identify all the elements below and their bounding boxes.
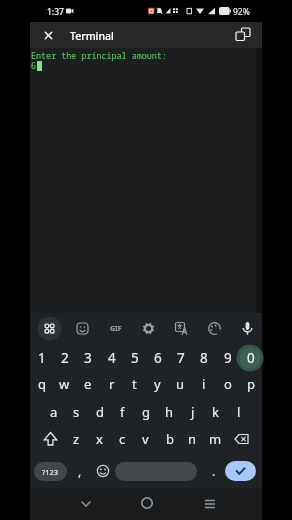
button[interactable]: h: [158, 399, 181, 425]
staticText: i: [202, 375, 206, 393]
staticText: u: [176, 375, 185, 393]
button[interactable]: v: [134, 426, 157, 452]
button[interactable]: 1: [30, 345, 53, 371]
staticText: 7: [177, 349, 185, 367]
button[interactable]: 4: [100, 345, 123, 371]
button[interactable]: [169, 316, 194, 341]
staticText: 1:37: [47, 6, 64, 18]
staticText: m: [209, 430, 222, 448]
button[interactable]: 3: [76, 345, 99, 371]
staticText: 3: [84, 349, 92, 367]
staticText: 9: [224, 349, 232, 367]
staticText: o: [224, 375, 232, 393]
button[interactable]: [136, 316, 161, 341]
button[interactable]: b: [158, 426, 181, 452]
staticText: 92%: [233, 6, 250, 18]
button[interactable]: j: [181, 399, 204, 425]
staticText: ,: [78, 463, 82, 479]
staticText: 4: [108, 349, 116, 367]
staticText: Enter the principal amount:: [31, 50, 167, 61]
button[interactable]: [115, 462, 197, 481]
button[interactable]: [37, 316, 62, 341]
button[interactable]: GIF: [103, 316, 128, 341]
button[interactable]: [199, 493, 221, 515]
button[interactable]: i: [192, 371, 215, 397]
staticText: l: [237, 403, 241, 421]
staticText: GIF: [110, 324, 122, 334]
staticText: 6: [31, 60, 37, 71]
button[interactable]: d: [88, 399, 111, 425]
button[interactable]: ,: [72, 458, 88, 484]
button[interactable]: 8: [192, 345, 215, 371]
staticText: 2: [61, 349, 69, 367]
staticText: y: [154, 375, 161, 393]
button[interactable]: [232, 24, 254, 46]
staticText: r: [109, 375, 115, 393]
button[interactable]: q: [30, 371, 53, 397]
button[interactable]: z: [65, 426, 88, 452]
button[interactable]: n: [181, 426, 204, 452]
button[interactable]: y: [146, 371, 169, 397]
staticText: w: [59, 375, 70, 393]
staticText: 0: [247, 349, 255, 367]
staticText: 5: [131, 349, 139, 367]
button[interactable]: [227, 426, 262, 452]
staticText: 6: [154, 349, 162, 367]
button[interactable]: 0: [239, 345, 262, 371]
button[interactable]: [38, 25, 59, 46]
staticText: z: [73, 430, 80, 448]
staticText: a: [50, 403, 58, 421]
staticText: j: [191, 403, 195, 421]
button[interactable]: [75, 493, 97, 515]
button[interactable]: c: [111, 426, 134, 452]
button[interactable]: e: [76, 371, 99, 397]
staticText: n: [188, 430, 197, 448]
button[interactable]: t: [123, 371, 146, 397]
button[interactable]: s: [65, 399, 88, 425]
button[interactable]: [92, 459, 114, 483]
button[interactable]: g: [134, 399, 157, 425]
button[interactable]: 7: [169, 345, 192, 371]
staticText: q: [38, 375, 46, 393]
button[interactable]: 9: [216, 345, 239, 371]
staticText: x: [96, 430, 103, 448]
button[interactable]: f: [111, 399, 134, 425]
button[interactable]: 2: [53, 345, 76, 371]
staticText: s: [73, 403, 80, 421]
staticText: d: [96, 403, 104, 421]
staticText: Terminal: [70, 29, 114, 43]
button[interactable]: p: [239, 371, 262, 397]
button[interactable]: w: [53, 371, 76, 397]
button[interactable]: ?123: [34, 462, 67, 481]
staticText: 8: [200, 349, 208, 367]
staticText: k: [212, 403, 219, 421]
staticText: t: [132, 375, 137, 393]
staticText: .: [212, 463, 216, 479]
button[interactable]: m: [204, 426, 227, 452]
button[interactable]: [30, 426, 65, 452]
button[interactable]: k: [204, 399, 227, 425]
button[interactable]: u: [169, 371, 192, 397]
staticText: b: [166, 430, 174, 448]
button[interactable]: 5: [123, 345, 146, 371]
button[interactable]: r: [100, 371, 123, 397]
staticText: h: [165, 403, 174, 421]
button[interactable]: l: [227, 399, 250, 425]
button[interactable]: [235, 316, 260, 341]
button[interactable]: [202, 316, 227, 341]
staticText: ?123: [42, 467, 59, 477]
button[interactable]: x: [88, 426, 111, 452]
staticText: p: [247, 375, 255, 393]
button[interactable]: 6: [146, 345, 169, 371]
button[interactable]: o: [216, 371, 239, 397]
button[interactable]: [136, 492, 158, 514]
button[interactable]: a: [42, 399, 65, 425]
button[interactable]: [225, 461, 256, 481]
staticText: 1: [38, 349, 46, 367]
staticText: e: [84, 375, 92, 393]
button[interactable]: .: [206, 458, 222, 484]
staticText: f: [120, 403, 125, 421]
staticText: v: [142, 430, 149, 448]
staticText: g: [142, 403, 150, 421]
button[interactable]: [70, 316, 95, 341]
